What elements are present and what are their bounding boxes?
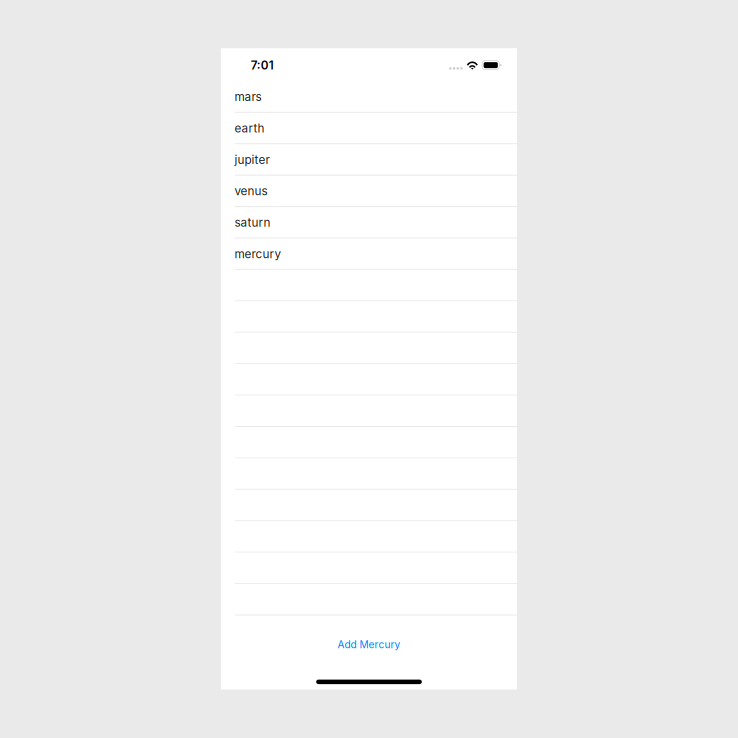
staticText: earth [235,121,265,135]
staticText: saturn [235,215,271,230]
button[interactable]: earth [221,113,517,143]
button[interactable]: venus [221,176,517,206]
button[interactable]: saturn [221,207,517,237]
staticText: venus [235,184,268,198]
button[interactable]: mercury [221,238,517,269]
button[interactable]: mars [221,81,517,112]
staticText: jupiter [235,153,270,167]
button[interactable]: jupiter [221,144,517,175]
button[interactable]: Add Mercury [221,635,517,654]
staticText: mercury [235,247,282,261]
staticText: mars [235,90,262,104]
staticText: Add Mercury [337,638,400,651]
staticText: 7:01 [251,58,274,72]
